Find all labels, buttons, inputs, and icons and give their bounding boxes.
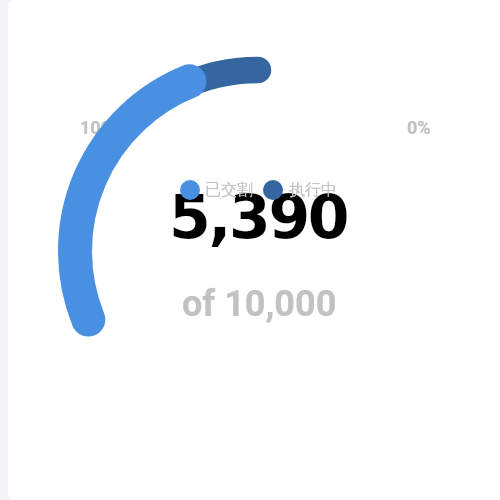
staticText: 5,390 bbox=[169, 182, 348, 252]
staticText: of 10,000 bbox=[182, 283, 337, 325]
staticText: 0% bbox=[407, 117, 431, 138]
button[interactable]: 已交割 bbox=[180, 180, 336, 200]
staticText: 已交割 bbox=[205, 180, 253, 200]
staticText: 执行中 bbox=[289, 180, 337, 200]
other: Progress gauge bbox=[0, 0, 500, 500]
staticText: 100% bbox=[80, 117, 125, 138]
